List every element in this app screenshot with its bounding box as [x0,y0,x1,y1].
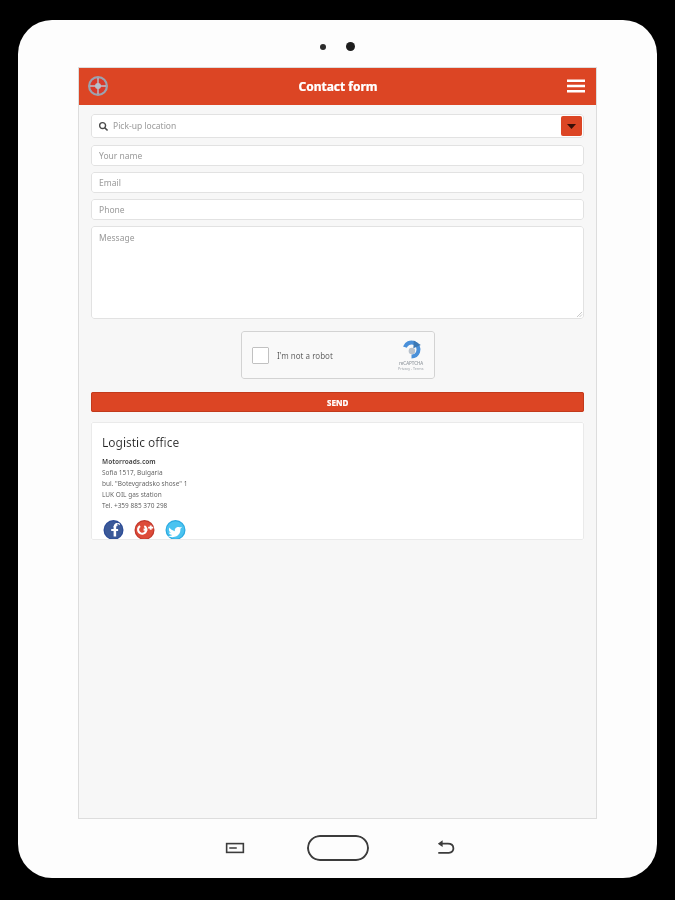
staticText: bul. "Botevgradsko shose" 1 [102,479,188,488]
button[interactable]: I'm not a robot [241,331,435,379]
staticText: Tel. +359 885 370 298 [102,501,168,510]
staticText: Email [99,177,121,189]
button[interactable]: Menu [565,75,587,97]
staticText: I'm not a robot [277,350,333,361]
button[interactable]: Open location list [561,116,582,136]
button[interactable]: Google Plus [133,520,156,540]
button[interactable]: Message [91,226,584,319]
staticText: reCAPTCHA [399,360,424,366]
button[interactable]: Home logo [88,76,108,96]
staticText: Message [99,232,135,244]
staticText: Sofia 1517, Bulgaria [102,468,163,477]
button[interactable]: Phone [91,199,584,220]
staticText: Contact form [298,78,378,94]
staticText: Phone [99,204,125,216]
button[interactable]: Your name [91,145,584,166]
staticText: SEND [327,397,349,408]
button[interactable]: Twitter [164,520,187,540]
staticText: Pick-up location [113,120,177,132]
staticText: Logistic office [102,434,180,450]
button[interactable]: Email [91,172,584,193]
staticText: Privacy - Terms [398,366,424,371]
staticText: Your name [99,150,143,162]
staticText: LUK OIL gas station [102,490,162,499]
button[interactable]: SEND [91,392,584,412]
staticText: Motorroads.com [102,457,156,466]
button[interactable]: Pick-up location [91,114,584,138]
button[interactable]: Facebook [102,520,125,540]
